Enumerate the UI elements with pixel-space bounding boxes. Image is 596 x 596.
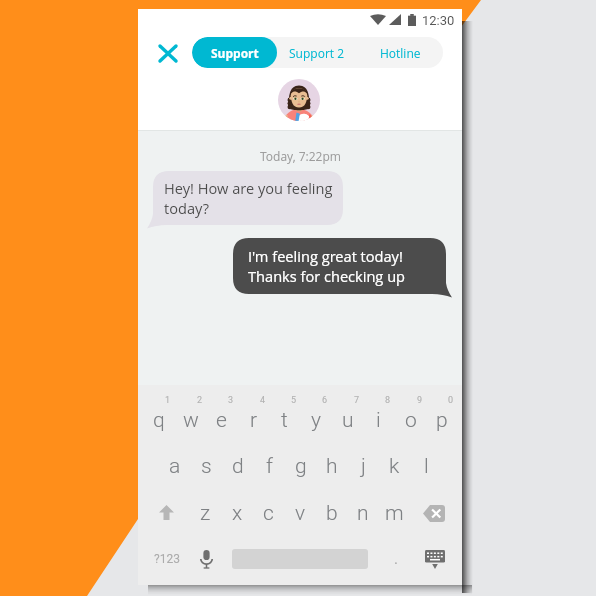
- button[interactable]: g: [285, 452, 316, 480]
- staticText: i: [376, 408, 381, 433]
- staticText: Support: [211, 45, 259, 61]
- staticText: 2: [197, 395, 203, 406]
- button[interactable]: n: [347, 499, 378, 527]
- staticText: 1: [165, 395, 171, 406]
- staticText: I'm feeling great today! Thanks for chec…: [248, 246, 406, 286]
- staticText: v: [295, 501, 306, 526]
- staticText: c: [263, 501, 274, 526]
- button[interactable]: Agent avatar: [278, 79, 320, 121]
- button[interactable]: Voice input: [193, 545, 219, 573]
- staticText: b: [326, 501, 338, 526]
- staticText: k: [389, 454, 400, 479]
- staticText: x: [232, 501, 243, 526]
- button[interactable]: 6: [300, 395, 331, 433]
- staticText: r: [250, 408, 258, 433]
- button[interactable]: s: [191, 452, 222, 480]
- button[interactable]: z: [190, 499, 221, 527]
- button[interactable]: 5: [269, 395, 300, 433]
- staticText: 3: [228, 395, 234, 406]
- staticText: ?123: [154, 552, 180, 566]
- staticText: 6: [322, 395, 328, 406]
- staticText: a: [169, 454, 181, 479]
- button[interactable]: .: [384, 545, 408, 573]
- button[interactable]: Hotline: [365, 37, 435, 68]
- staticText: h: [326, 454, 338, 479]
- staticText: q: [153, 408, 165, 433]
- button[interactable]: j: [348, 452, 379, 480]
- staticText: n: [357, 501, 369, 526]
- button[interactable]: 3: [206, 395, 237, 433]
- button[interactable]: 4: [238, 395, 269, 433]
- staticText: m: [385, 501, 404, 526]
- staticText: 5: [291, 395, 297, 406]
- button[interactable]: Support 2: [277, 37, 357, 68]
- staticText: 9: [417, 395, 423, 406]
- button[interactable]: 9: [395, 395, 426, 433]
- staticText: Today, 7:22pm: [260, 148, 341, 164]
- button[interactable]: v: [285, 499, 316, 527]
- button[interactable]: Support: [192, 37, 277, 68]
- staticText: f: [266, 454, 273, 479]
- staticText: l: [424, 454, 429, 479]
- button[interactable]: k: [379, 452, 410, 480]
- button[interactable]: Close: [152, 38, 183, 69]
- staticText: u: [342, 408, 354, 433]
- staticText: d: [232, 454, 244, 479]
- staticText: 0: [448, 395, 454, 406]
- button[interactable]: m: [379, 499, 410, 527]
- button[interactable]: Shift: [148, 498, 185, 527]
- button[interactable]: x: [222, 499, 253, 527]
- button[interactable]: 0: [426, 395, 457, 433]
- button[interactable]: 8: [363, 395, 394, 433]
- staticText: p: [436, 408, 448, 433]
- staticText: Hey! How are you feeling today?: [164, 178, 333, 218]
- staticText: o: [405, 408, 417, 433]
- button[interactable]: ?123: [148, 545, 186, 573]
- button[interactable]: f: [254, 452, 285, 480]
- staticText: 7: [354, 395, 360, 406]
- button[interactable]: 7: [332, 395, 363, 433]
- button[interactable]: Hide keyboard: [421, 545, 449, 573]
- staticText: Support 2: [289, 45, 345, 61]
- staticText: Hotline: [380, 45, 421, 61]
- staticText: g: [295, 454, 307, 479]
- button[interactable]: l: [411, 452, 442, 480]
- staticText: w: [183, 408, 199, 433]
- staticText: y: [311, 408, 321, 433]
- button[interactable]: h: [316, 452, 347, 480]
- button[interactable]: c: [253, 499, 284, 527]
- button[interactable]: 2: [175, 395, 206, 433]
- button[interactable]: a: [159, 452, 190, 480]
- staticText: 12:30: [422, 13, 455, 26]
- staticText: s: [201, 454, 212, 479]
- staticText: z: [200, 501, 211, 526]
- staticText: 4: [260, 395, 266, 406]
- staticText: j: [361, 454, 366, 479]
- staticText: e: [216, 408, 227, 433]
- button[interactable]: Backspace: [416, 499, 452, 527]
- button[interactable]: b: [316, 499, 347, 527]
- staticText: 8: [385, 395, 391, 406]
- button[interactable]: 1: [143, 395, 174, 433]
- staticText: t: [281, 408, 288, 433]
- staticText: .: [394, 550, 398, 568]
- button[interactable]: d: [222, 452, 253, 480]
